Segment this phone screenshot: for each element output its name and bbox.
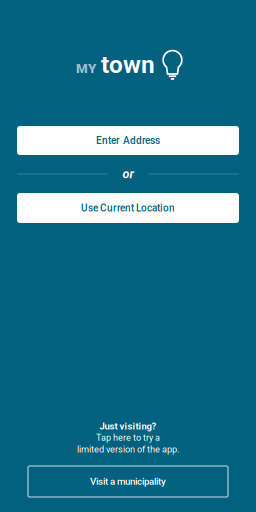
staticText: Tap here to try a (96, 432, 160, 443)
staticText: or (122, 167, 133, 181)
button[interactable]: Enter Address (17, 126, 239, 155)
staticText: Just visiting? (99, 421, 156, 432)
staticText: MY (76, 61, 96, 76)
staticText: Enter Address (96, 135, 160, 146)
button[interactable]: Use Current Location (17, 193, 239, 223)
staticText: town (101, 50, 155, 79)
staticText: limited version of the app. (77, 444, 179, 455)
button[interactable]: Visit a municipality (28, 466, 228, 497)
staticText: Use Current Location (81, 202, 175, 214)
staticText: Visit a municipality (90, 476, 166, 487)
button[interactable]: Just visiting? (77, 420, 179, 455)
